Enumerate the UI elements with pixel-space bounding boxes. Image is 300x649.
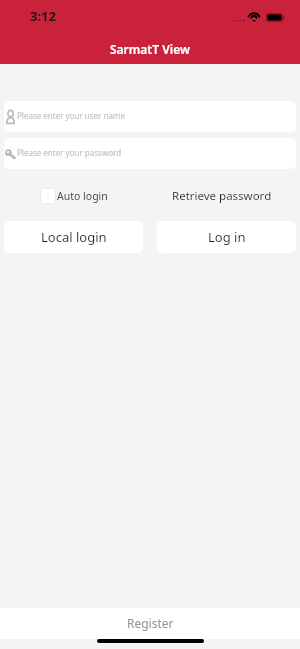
button[interactable]: Password field xyxy=(4,138,296,169)
button[interactable]: Register xyxy=(0,608,300,639)
staticText: Register xyxy=(127,615,174,631)
staticText: 3:12 xyxy=(30,7,56,25)
staticText: Please enter your password xyxy=(17,147,122,158)
staticText: Auto login xyxy=(57,189,108,203)
staticText: Please enter your user name xyxy=(17,110,125,121)
button[interactable]: Retrieve password xyxy=(172,188,272,204)
staticText: SarmatT View xyxy=(110,41,190,57)
staticText: Retrieve password xyxy=(172,188,272,204)
button[interactable]: Local login xyxy=(4,221,143,253)
staticText: Local login xyxy=(41,228,107,246)
button[interactable]: User name field xyxy=(4,101,296,132)
button[interactable]: Auto login xyxy=(40,188,108,204)
button[interactable]: Log in xyxy=(157,221,296,253)
staticText: Log in xyxy=(208,228,246,246)
